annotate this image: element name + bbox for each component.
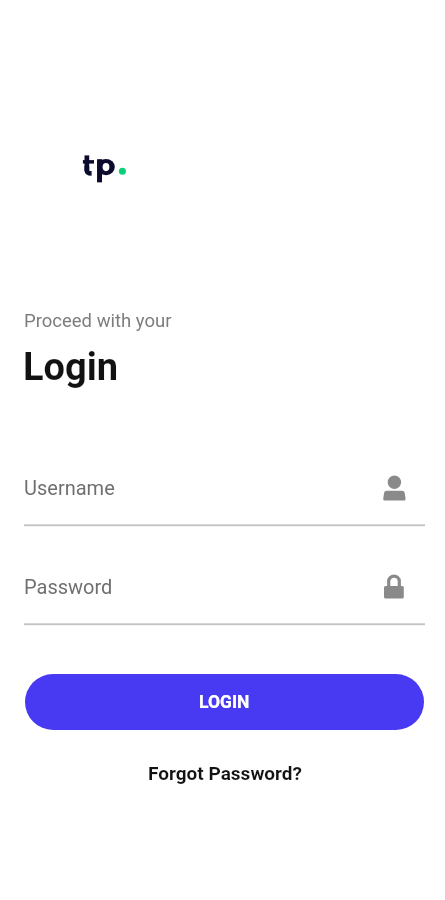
staticText: Password (24, 575, 113, 598)
other: Password (376, 571, 412, 607)
staticText: Login (23, 345, 119, 390)
button[interactable]: Forgot Password? (138, 757, 312, 789)
button[interactable]: Password (24, 565, 425, 627)
button[interactable]: LOGIN (25, 674, 424, 730)
other: Username (375, 471, 414, 510)
staticText: Proceed with your (24, 310, 172, 332)
other: tp logo (80, 152, 128, 186)
staticText: Forgot Password? (148, 762, 303, 784)
button[interactable]: Username (24, 466, 425, 528)
staticText: LOGIN (199, 692, 250, 713)
staticText: Username (24, 476, 115, 499)
